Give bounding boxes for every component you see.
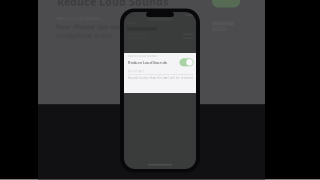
staticText: Sounds louder than this level will be re… [128,76,193,80]
staticText: 9:41 [127,13,134,17]
staticText: Your iPhone can analyze [56,22,135,31]
staticText: Reduce Loud Sounds [128,60,167,65]
staticText: Reduce Loud Sounds [57,0,168,9]
staticText: REDUCE LOUD SOUNDS [128,54,157,58]
staticText: Sound Level [128,69,144,73]
